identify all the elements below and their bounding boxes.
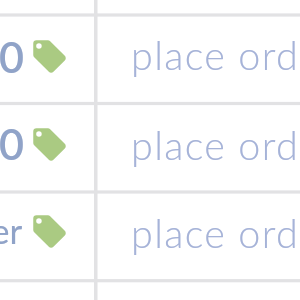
button[interactable]: [0, 105, 94, 190]
button[interactable]: [0, 17, 94, 102]
staticText: place order: [131, 209, 300, 256]
button[interactable]: [98, 194, 300, 279]
button[interactable]: [98, 105, 300, 190]
staticText: place order: [131, 121, 300, 168]
button[interactable]: [98, 17, 300, 102]
button[interactable]: [0, 194, 94, 279]
staticText: 0: [0, 118, 24, 170]
staticText: er: [0, 209, 23, 251]
staticText: place order: [131, 31, 300, 78]
staticText: 0: [0, 31, 24, 83]
